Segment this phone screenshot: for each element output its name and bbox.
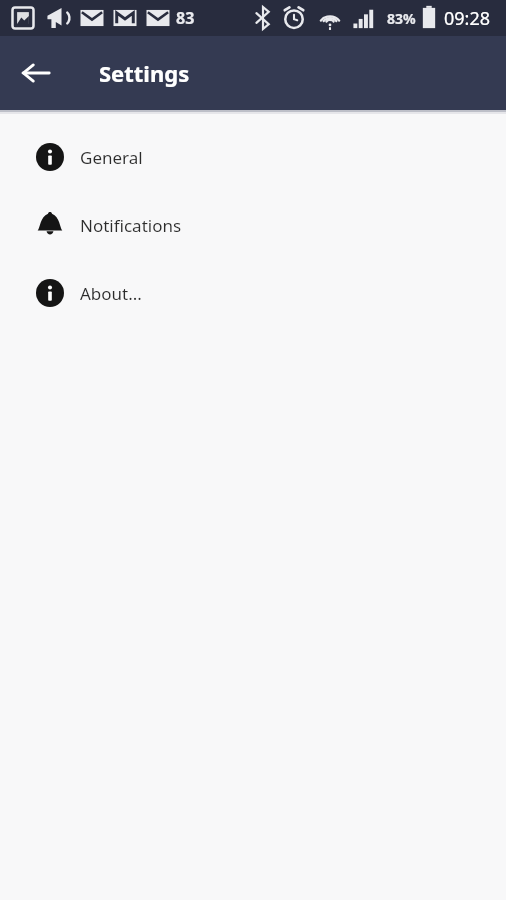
staticText: 09:28 [444,6,491,31]
staticText: Notifications [80,214,182,237]
staticText: 83 [176,7,195,29]
button[interactable]: About... [0,259,506,327]
button[interactable]: Notifications [0,191,506,259]
staticText: General [80,146,143,169]
button[interactable]: General [0,123,506,191]
staticText: About... [80,282,142,305]
staticText: 83% [387,9,416,28]
staticText: Settings [99,58,190,88]
button[interactable]: Back [8,45,64,101]
